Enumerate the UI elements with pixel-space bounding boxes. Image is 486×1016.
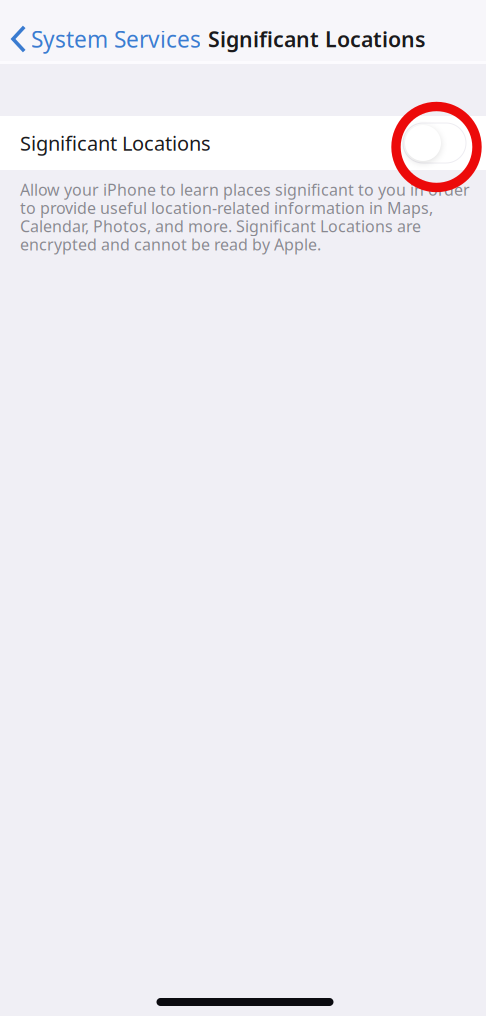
staticText: Significant Locations	[20, 130, 211, 156]
staticText: Allow your iPhone to learn places signif…	[20, 179, 470, 255]
staticText: System Services	[31, 24, 201, 54]
staticText: Significant Locations	[208, 25, 426, 53]
button[interactable]: Significant Locations	[0, 116, 486, 170]
button[interactable]: Back to System Services	[0, 17, 201, 61]
